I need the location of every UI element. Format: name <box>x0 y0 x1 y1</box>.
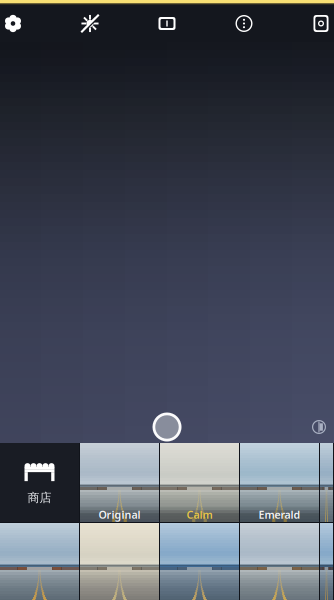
button[interactable]: Settings <box>0 5 26 42</box>
staticText: Calm <box>186 507 212 522</box>
button[interactable]: Calm <box>160 443 239 522</box>
button[interactable]: Emerald <box>240 443 319 522</box>
button[interactable] <box>160 523 239 600</box>
button[interactable] <box>240 523 319 600</box>
button[interactable] <box>320 523 333 600</box>
button[interactable]: 商店 <box>0 443 79 522</box>
button[interactable] <box>320 443 333 522</box>
button[interactable]: Shutter <box>145 405 189 449</box>
button[interactable]: Original <box>80 443 159 522</box>
staticText: Emerald <box>258 507 300 522</box>
button[interactable] <box>80 523 159 600</box>
button[interactable]: Compare <box>305 413 333 441</box>
button[interactable] <box>0 523 79 600</box>
button[interactable]: Flash off <box>77 5 103 42</box>
staticText: 商店 <box>27 490 51 505</box>
button[interactable]: Timer <box>231 5 257 42</box>
button[interactable]: Switch camera <box>308 5 334 42</box>
staticText: Original <box>98 507 140 522</box>
button[interactable]: Aspect ratio <box>154 5 180 42</box>
